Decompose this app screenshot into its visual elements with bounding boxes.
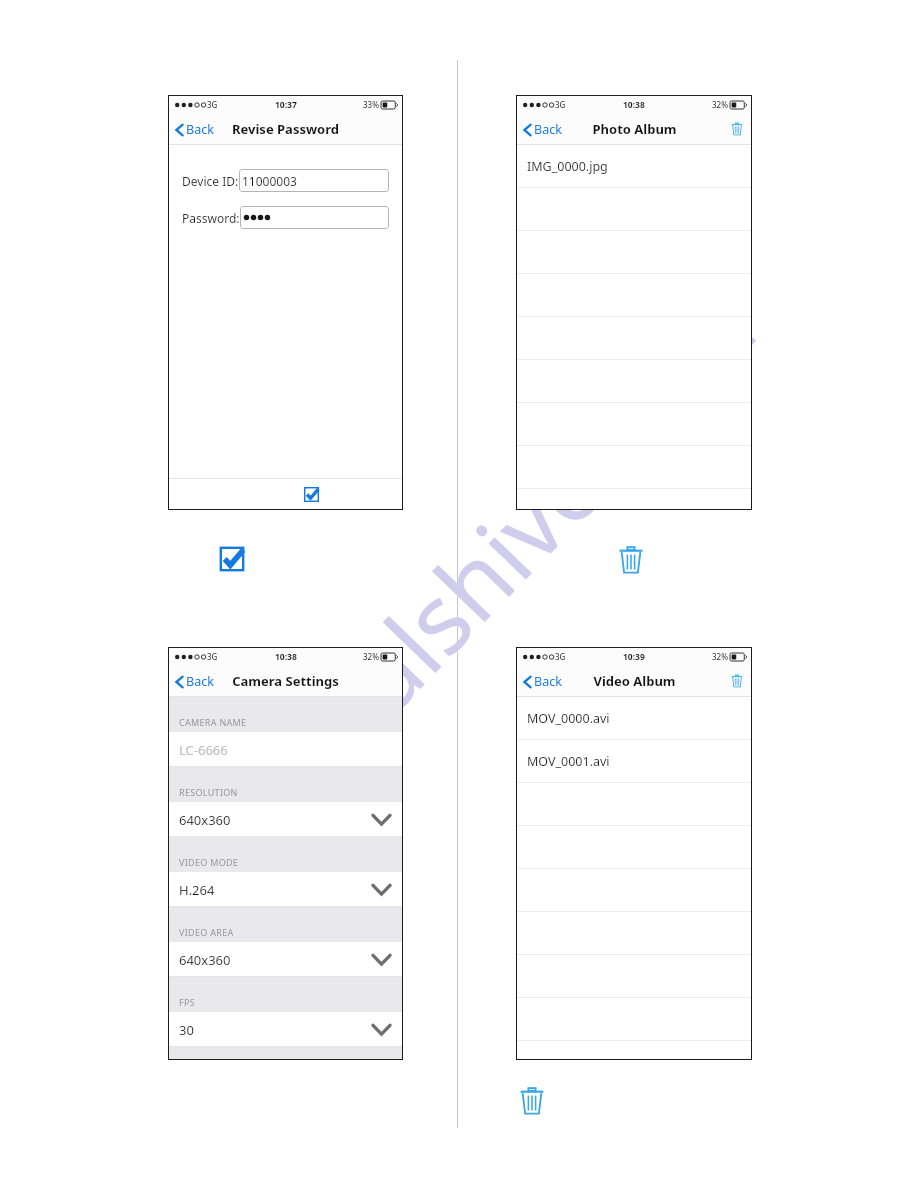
button[interactable] bbox=[516, 869, 752, 912]
staticText: FPS bbox=[179, 996, 195, 1008]
staticText: Back bbox=[186, 121, 214, 138]
staticText: Photo Album bbox=[592, 120, 677, 138]
staticText: Back bbox=[534, 121, 562, 138]
staticText: 30 bbox=[179, 1021, 194, 1039]
staticText: H.264 bbox=[179, 881, 215, 899]
button[interactable]: 11000003 bbox=[239, 169, 389, 192]
button[interactable]: Back bbox=[521, 670, 564, 693]
staticText: 3G bbox=[207, 99, 218, 110]
staticText: 3G bbox=[555, 99, 566, 110]
button[interactable] bbox=[516, 489, 752, 510]
button[interactable] bbox=[516, 317, 752, 360]
staticText: 32% bbox=[363, 651, 379, 662]
button[interactable] bbox=[516, 274, 752, 317]
button[interactable]: 640x360 bbox=[168, 942, 403, 977]
button[interactable]: Delete bbox=[728, 672, 746, 690]
button[interactable]: 30 bbox=[168, 1012, 403, 1047]
staticText: 32% bbox=[712, 651, 728, 662]
staticText: 640x360 bbox=[179, 811, 231, 829]
staticText: manualshive.com bbox=[136, 263, 782, 926]
staticText: Password: bbox=[182, 210, 240, 226]
button[interactable]: Back bbox=[173, 118, 216, 141]
button[interactable]: 640x360 bbox=[168, 802, 403, 837]
staticText: 32% bbox=[712, 99, 728, 110]
staticText: 640x360 bbox=[179, 951, 231, 969]
staticText: RESOLUTION bbox=[179, 786, 238, 798]
staticText: 3G bbox=[555, 651, 566, 662]
button[interactable] bbox=[516, 1041, 752, 1060]
button[interactable]: Confirm bbox=[301, 484, 322, 505]
staticText: Back bbox=[186, 673, 214, 690]
staticText: 10:37 bbox=[275, 99, 297, 111]
button[interactable] bbox=[516, 231, 752, 274]
staticText: Device ID: bbox=[182, 173, 239, 189]
button[interactable] bbox=[516, 360, 752, 403]
button[interactable]: IMG_0000.jpg bbox=[516, 145, 752, 188]
button[interactable]: Back bbox=[173, 670, 216, 693]
staticText: 3G bbox=[207, 651, 218, 662]
staticText: Back bbox=[534, 673, 562, 690]
staticText: IMG_0000.jpg bbox=[527, 158, 608, 175]
staticText: VIDEO MODE bbox=[179, 856, 239, 868]
staticText: MOV_0000.avi bbox=[527, 710, 610, 727]
button[interactable]: LC-6666 bbox=[168, 732, 403, 767]
button[interactable]: H.264 bbox=[168, 872, 403, 907]
staticText: CAMERA NAME bbox=[179, 716, 247, 728]
button[interactable] bbox=[240, 206, 389, 229]
button[interactable] bbox=[516, 783, 752, 826]
staticText: 11000003 bbox=[242, 173, 297, 189]
button[interactable]: MOV_0001.avi bbox=[516, 740, 752, 783]
button[interactable] bbox=[516, 826, 752, 869]
staticText: 33% bbox=[363, 99, 379, 110]
button[interactable] bbox=[516, 998, 752, 1041]
button[interactable]: Back bbox=[521, 118, 564, 141]
button[interactable]: Delete bbox=[728, 120, 746, 138]
button[interactable] bbox=[516, 955, 752, 998]
staticText: 10:38 bbox=[623, 99, 645, 111]
staticText: Revise Password bbox=[232, 120, 339, 138]
button[interactable] bbox=[516, 188, 752, 231]
staticText: 10:39 bbox=[623, 651, 645, 663]
staticText: MOV_0001.avi bbox=[527, 753, 610, 770]
staticText: Camera Settings bbox=[232, 672, 339, 690]
staticText: LC-6666 bbox=[179, 741, 228, 759]
button[interactable] bbox=[516, 912, 752, 955]
staticText: Video Album bbox=[593, 672, 676, 690]
staticText: VIDEO AREA bbox=[179, 926, 234, 938]
button[interactable] bbox=[516, 446, 752, 489]
button[interactable] bbox=[516, 403, 752, 446]
button[interactable]: MOV_0000.avi bbox=[516, 697, 752, 740]
staticText: 10:38 bbox=[275, 651, 297, 663]
